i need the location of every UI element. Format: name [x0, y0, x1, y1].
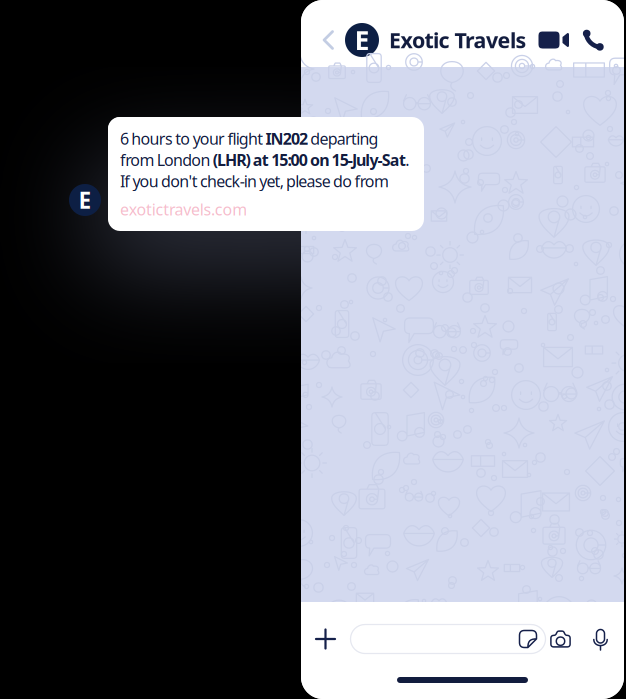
staticText: Exotic Travels [389, 26, 526, 54]
staticText: exotictravels.com [120, 199, 247, 220]
staticText: 6 hours to your flight IN202 departing f… [120, 128, 409, 192]
staticText: E [78, 185, 91, 215]
button[interactable]: Voice message [587, 617, 613, 661]
button[interactable]: Camera [545, 617, 575, 661]
button[interactable]: E [345, 22, 526, 58]
button[interactable]: Voice call [574, 15, 612, 65]
button[interactable]: Video call [534, 15, 574, 65]
staticText: E [354, 22, 369, 58]
button[interactable]: Message [350, 624, 545, 653]
button[interactable]: Attach [311, 617, 339, 661]
button[interactable]: Back [311, 20, 345, 60]
